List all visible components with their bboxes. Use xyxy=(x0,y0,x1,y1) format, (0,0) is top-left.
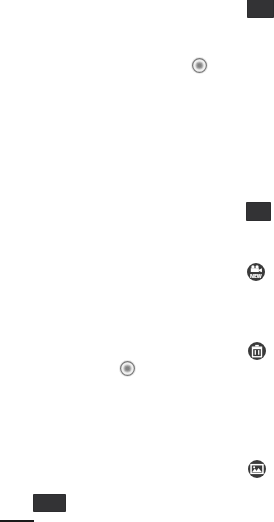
button[interactable]: Photo thumbnail xyxy=(246,202,271,221)
button[interactable]: New video xyxy=(247,263,265,281)
button[interactable]: Photo thumbnail xyxy=(33,494,66,512)
button[interactable]: Record xyxy=(119,360,136,377)
button[interactable]: Photo thumbnail xyxy=(247,0,274,18)
button[interactable]: Gallery xyxy=(248,460,266,478)
staticText: NEW xyxy=(250,273,262,280)
button[interactable]: Record xyxy=(191,57,208,74)
button[interactable]: Delete xyxy=(248,342,266,360)
